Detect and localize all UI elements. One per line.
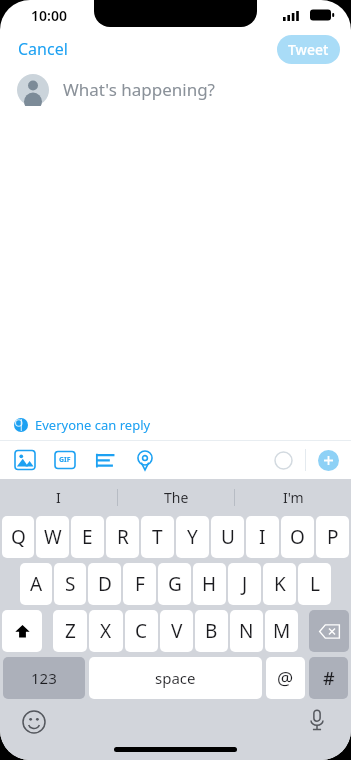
- button[interactable]: D: [88, 563, 121, 605]
- button[interactable]: Character count: [274, 451, 293, 470]
- staticText: I: [259, 524, 266, 550]
- staticText: K: [274, 571, 286, 597]
- staticText: U: [221, 524, 235, 550]
- staticText: E: [82, 524, 93, 550]
- button[interactable]: X: [89, 610, 123, 652]
- button[interactable]: N: [230, 610, 263, 652]
- staticText: W: [44, 524, 62, 550]
- button[interactable]: O: [281, 516, 314, 558]
- staticText: L: [310, 571, 320, 597]
- button[interactable]: Emoji: [22, 710, 46, 734]
- staticText: B: [205, 618, 218, 644]
- staticText: I: [56, 488, 61, 507]
- button[interactable]: P: [316, 516, 349, 558]
- button[interactable]: Add poll: [94, 449, 116, 471]
- button[interactable]: B: [195, 610, 228, 652]
- button[interactable]: A: [20, 563, 52, 605]
- button[interactable]: E: [71, 516, 104, 558]
- button[interactable]: Tweet: [277, 35, 340, 64]
- button[interactable]: V: [160, 610, 193, 652]
- button[interactable]: Backspace: [309, 610, 349, 652]
- staticText: D: [98, 571, 112, 597]
- button[interactable]: Q: [2, 516, 34, 558]
- staticText: Z: [65, 618, 76, 644]
- staticText: C: [135, 618, 148, 644]
- button[interactable]: Everyone can reply: [14, 410, 351, 440]
- button[interactable]: space: [89, 657, 262, 699]
- button[interactable]: I: [246, 516, 279, 558]
- staticText: S: [65, 571, 76, 597]
- button[interactable]: C: [125, 610, 158, 652]
- button[interactable]: S: [54, 563, 86, 605]
- staticText: Tweet: [288, 40, 329, 59]
- button[interactable]: I'm: [235, 479, 351, 516]
- button[interactable]: The: [118, 479, 234, 516]
- button[interactable]: U: [211, 516, 244, 558]
- staticText: GIF: [59, 455, 71, 465]
- staticText: Q: [11, 524, 26, 550]
- button[interactable]: J: [228, 563, 261, 605]
- staticText: N: [239, 618, 254, 644]
- button[interactable]: Add GIF: [54, 449, 76, 471]
- staticText: space: [155, 668, 196, 688]
- staticText: Y: [187, 524, 198, 550]
- staticText: F: [135, 571, 145, 597]
- staticText: V: [171, 618, 183, 644]
- staticText: G: [168, 571, 182, 597]
- staticText: A: [30, 571, 43, 597]
- staticText: What's happening?: [63, 78, 215, 101]
- button[interactable]: Add photo: [14, 449, 36, 471]
- button[interactable]: Add location: [134, 449, 156, 471]
- staticText: I'm: [283, 488, 304, 507]
- button[interactable]: @: [266, 657, 305, 699]
- button[interactable]: Z: [53, 610, 87, 652]
- button[interactable]: Shift: [2, 610, 42, 652]
- button[interactable]: G: [158, 563, 191, 605]
- staticText: R: [117, 524, 129, 550]
- staticText: Everyone can reply: [35, 416, 151, 434]
- button[interactable]: H: [193, 563, 226, 605]
- staticText: Cancel: [18, 38, 68, 60]
- button[interactable]: M: [265, 610, 298, 652]
- button[interactable]: W: [36, 516, 69, 558]
- staticText: T: [152, 524, 163, 550]
- button[interactable]: F: [123, 563, 156, 605]
- button[interactable]: T: [141, 516, 174, 558]
- button[interactable]: Y: [176, 516, 209, 558]
- button[interactable]: K: [263, 563, 296, 605]
- staticText: #: [323, 666, 335, 691]
- staticText: 10:00: [31, 6, 67, 25]
- staticText: P: [327, 524, 339, 550]
- staticText: The: [164, 488, 189, 507]
- button[interactable]: Cancel: [18, 38, 68, 60]
- button[interactable]: Add another tweet: [318, 450, 339, 471]
- button[interactable]: I: [0, 479, 117, 516]
- staticText: X: [100, 618, 112, 644]
- staticText: H: [202, 571, 217, 597]
- staticText: 123: [31, 668, 57, 688]
- button[interactable]: L: [298, 563, 331, 605]
- staticText: M: [273, 618, 291, 644]
- staticText: J: [242, 571, 248, 597]
- button[interactable]: Dictation: [305, 708, 329, 732]
- staticText: O: [290, 524, 305, 550]
- button[interactable]: R: [106, 516, 139, 558]
- button[interactable]: 123: [3, 657, 85, 699]
- button[interactable]: #: [309, 657, 348, 699]
- staticText: @: [277, 666, 294, 691]
